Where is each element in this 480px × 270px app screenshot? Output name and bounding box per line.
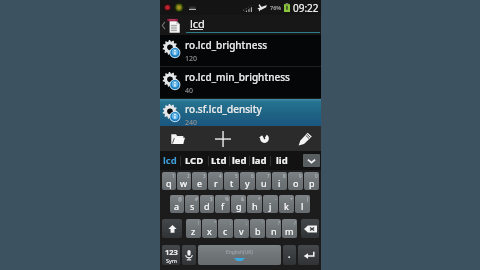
- staticText: k: [284, 200, 289, 212]
- staticText: 6: [251, 173, 254, 179]
- staticText: b: [255, 225, 261, 237]
- button[interactable]: lad: [249, 151, 270, 170]
- button[interactable]: More suggestions: [303, 154, 320, 167]
- button[interactable]: Ltd: [208, 151, 229, 170]
- button[interactable]: ro.lcd_min_brightness: [160, 67, 321, 99]
- staticText: ': [262, 220, 264, 226]
- staticText: 7: [267, 173, 270, 179]
- staticText: 4: [219, 173, 222, 179]
- staticText: u: [261, 177, 267, 189]
- button[interactable]: 123: [162, 245, 180, 265]
- button[interactable]: %: [215, 195, 230, 213]
- button[interactable]: -: [263, 195, 278, 213]
- button[interactable]: &: [231, 195, 246, 213]
- staticText: .: [288, 248, 291, 260]
- button[interactable]: ": [202, 219, 217, 238]
- button[interactable]: 6: [240, 172, 255, 190]
- staticText: c: [223, 225, 228, 237]
- staticText: 120: [185, 54, 198, 64]
- button[interactable]: 2: [177, 172, 191, 190]
- button[interactable]: 0: [304, 172, 319, 190]
- staticText: 5: [235, 173, 238, 179]
- button[interactable]: #: [185, 195, 199, 213]
- staticText: English(UK): [226, 249, 253, 256]
- button[interactable]: $: [200, 195, 214, 213]
- button[interactable]: Open file: [161, 126, 194, 151]
- button[interactable]: ro.sf.lcd_density: [160, 99, 321, 126]
- button[interactable]: 8: [272, 172, 287, 190]
- staticText: 09:22: [293, 1, 319, 15]
- button[interactable]: Shift: [162, 219, 182, 238]
- button[interactable]: !: [186, 219, 201, 238]
- button[interactable]: (: [295, 195, 310, 213]
- button[interactable]: Add: [206, 126, 239, 151]
- staticText: !: [198, 220, 200, 226]
- staticText: t: [230, 177, 234, 189]
- staticText: :: [230, 220, 232, 226]
- staticText: n: [271, 225, 277, 237]
- button[interactable]: Back: [160, 15, 180, 35]
- staticText: 0: [315, 173, 318, 179]
- button[interactable]: .: [283, 245, 296, 265]
- staticText: %: [225, 196, 229, 202]
- staticText: v: [239, 225, 244, 237]
- button[interactable]: 5: [224, 172, 239, 190]
- staticText: f: [221, 200, 225, 212]
- staticText: a: [174, 200, 180, 212]
- staticText: #: [195, 196, 198, 202]
- staticText: lcd: [163, 154, 177, 167]
- staticText: r: [214, 177, 218, 189]
- staticText: ?: [278, 220, 280, 226]
- staticText: 40: [185, 86, 194, 96]
- button[interactable]: +: [279, 195, 294, 213]
- staticText: ro.sf.lcd_density: [185, 102, 262, 116]
- button[interactable]: ;: [234, 219, 249, 238]
- button[interactable]: ro.lcd_brightness: [160, 35, 321, 67]
- button[interactable]: Refresh: [248, 126, 281, 151]
- button[interactable]: 3: [192, 172, 207, 190]
- staticText: x: [207, 225, 212, 237]
- button[interactable]: ?: [266, 219, 281, 238]
- staticText: 240: [185, 118, 198, 126]
- button[interactable]: Enter: [298, 245, 319, 265]
- staticText: lad: [252, 154, 267, 167]
- button[interactable]: /: [282, 219, 297, 238]
- button[interactable]: 4: [208, 172, 223, 190]
- button[interactable]: ': [250, 219, 265, 238]
- button[interactable]: @: [170, 195, 184, 213]
- button[interactable]: 1: [162, 172, 176, 190]
- staticText: 9: [299, 173, 302, 179]
- button[interactable]: 7: [256, 172, 271, 190]
- staticText: *: [258, 196, 261, 202]
- other: Back: [161, 21, 166, 30]
- staticText: LCD: [185, 154, 204, 167]
- button[interactable]: lcd: [160, 151, 180, 170]
- staticText: j: [269, 200, 272, 212]
- staticText: $: [210, 196, 213, 202]
- staticText: h: [252, 200, 258, 212]
- button[interactable]: Backspace: [301, 219, 319, 238]
- button[interactable]: LCD: [180, 151, 208, 170]
- staticText: 3: [203, 173, 206, 179]
- staticText: &: [241, 196, 245, 202]
- button[interactable]: *: [247, 195, 262, 213]
- staticText: @: [178, 196, 183, 202]
- staticText: g: [236, 200, 242, 212]
- staticText: s: [190, 200, 195, 212]
- staticText: y: [245, 177, 250, 189]
- staticText: ro.lcd_min_brightness: [185, 70, 290, 84]
- staticText: e: [197, 177, 203, 189]
- button[interactable]: English(UK): [198, 245, 281, 265]
- button[interactable]: 9: [288, 172, 303, 190]
- button[interactable]: led: [229, 151, 249, 170]
- staticText: lid: [276, 154, 288, 167]
- button[interactable]: Edit: [289, 126, 322, 151]
- button[interactable]: :: [218, 219, 233, 238]
- staticText: 8: [283, 173, 286, 179]
- staticText: d: [204, 200, 210, 212]
- staticText: 123: [165, 247, 178, 257]
- button[interactable]: Voice input: [182, 245, 196, 265]
- button[interactable]: lid: [270, 151, 294, 170]
- staticText: Sym: [166, 257, 177, 264]
- staticText: q: [166, 177, 172, 189]
